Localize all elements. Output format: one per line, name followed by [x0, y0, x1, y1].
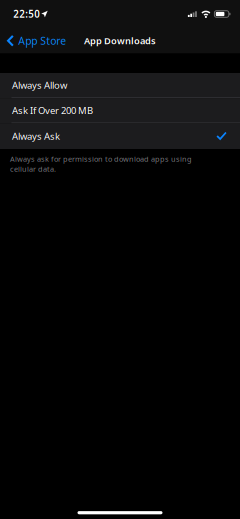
button[interactable]: Ask If Over 200 MB — [0, 98, 240, 123]
staticText: Ask If Over 200 MB — [12, 104, 93, 117]
staticText: Always Allow — [12, 79, 67, 92]
staticText: Always ask for permission to download ap… — [10, 154, 192, 174]
button[interactable]: Always Ask — [0, 123, 240, 149]
staticText: Always Ask — [12, 130, 60, 143]
staticText: 22:50 — [13, 7, 40, 21]
button[interactable]: Always Allow — [0, 73, 240, 98]
staticText: App Downloads — [84, 34, 156, 47]
staticText: App Store — [18, 34, 66, 48]
button[interactable]: App Store — [0, 30, 71, 52]
